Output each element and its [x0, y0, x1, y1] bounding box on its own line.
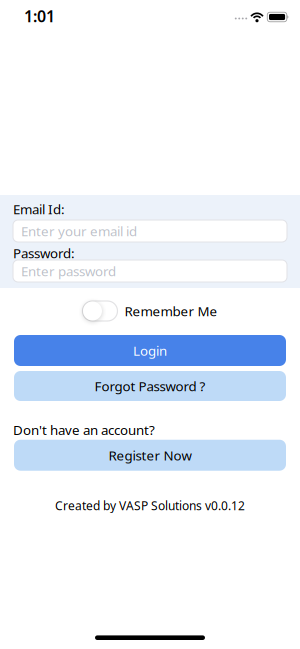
- staticText: Enter your email id: [21, 222, 137, 240]
- staticText: Password:: [13, 244, 75, 262]
- staticText: Don't have an account?: [13, 421, 155, 439]
- staticText: Created by VASP Solutions v0.0.12: [55, 498, 245, 514]
- staticText: Enter password: [21, 262, 116, 280]
- staticText: Register Now: [108, 446, 191, 464]
- staticText: Remember Me: [124, 302, 217, 320]
- staticText: 1:01: [24, 5, 55, 27]
- button[interactable]: Register Now: [14, 440, 286, 471]
- staticText: Forgot Password ?: [94, 377, 205, 395]
- staticText: Login: [133, 342, 167, 359]
- button[interactable]: Remember Me: [82, 301, 217, 321]
- button[interactable]: Forgot Password ?: [14, 371, 286, 401]
- staticText: Email Id:: [13, 200, 65, 218]
- button[interactable]: Login: [14, 335, 286, 366]
